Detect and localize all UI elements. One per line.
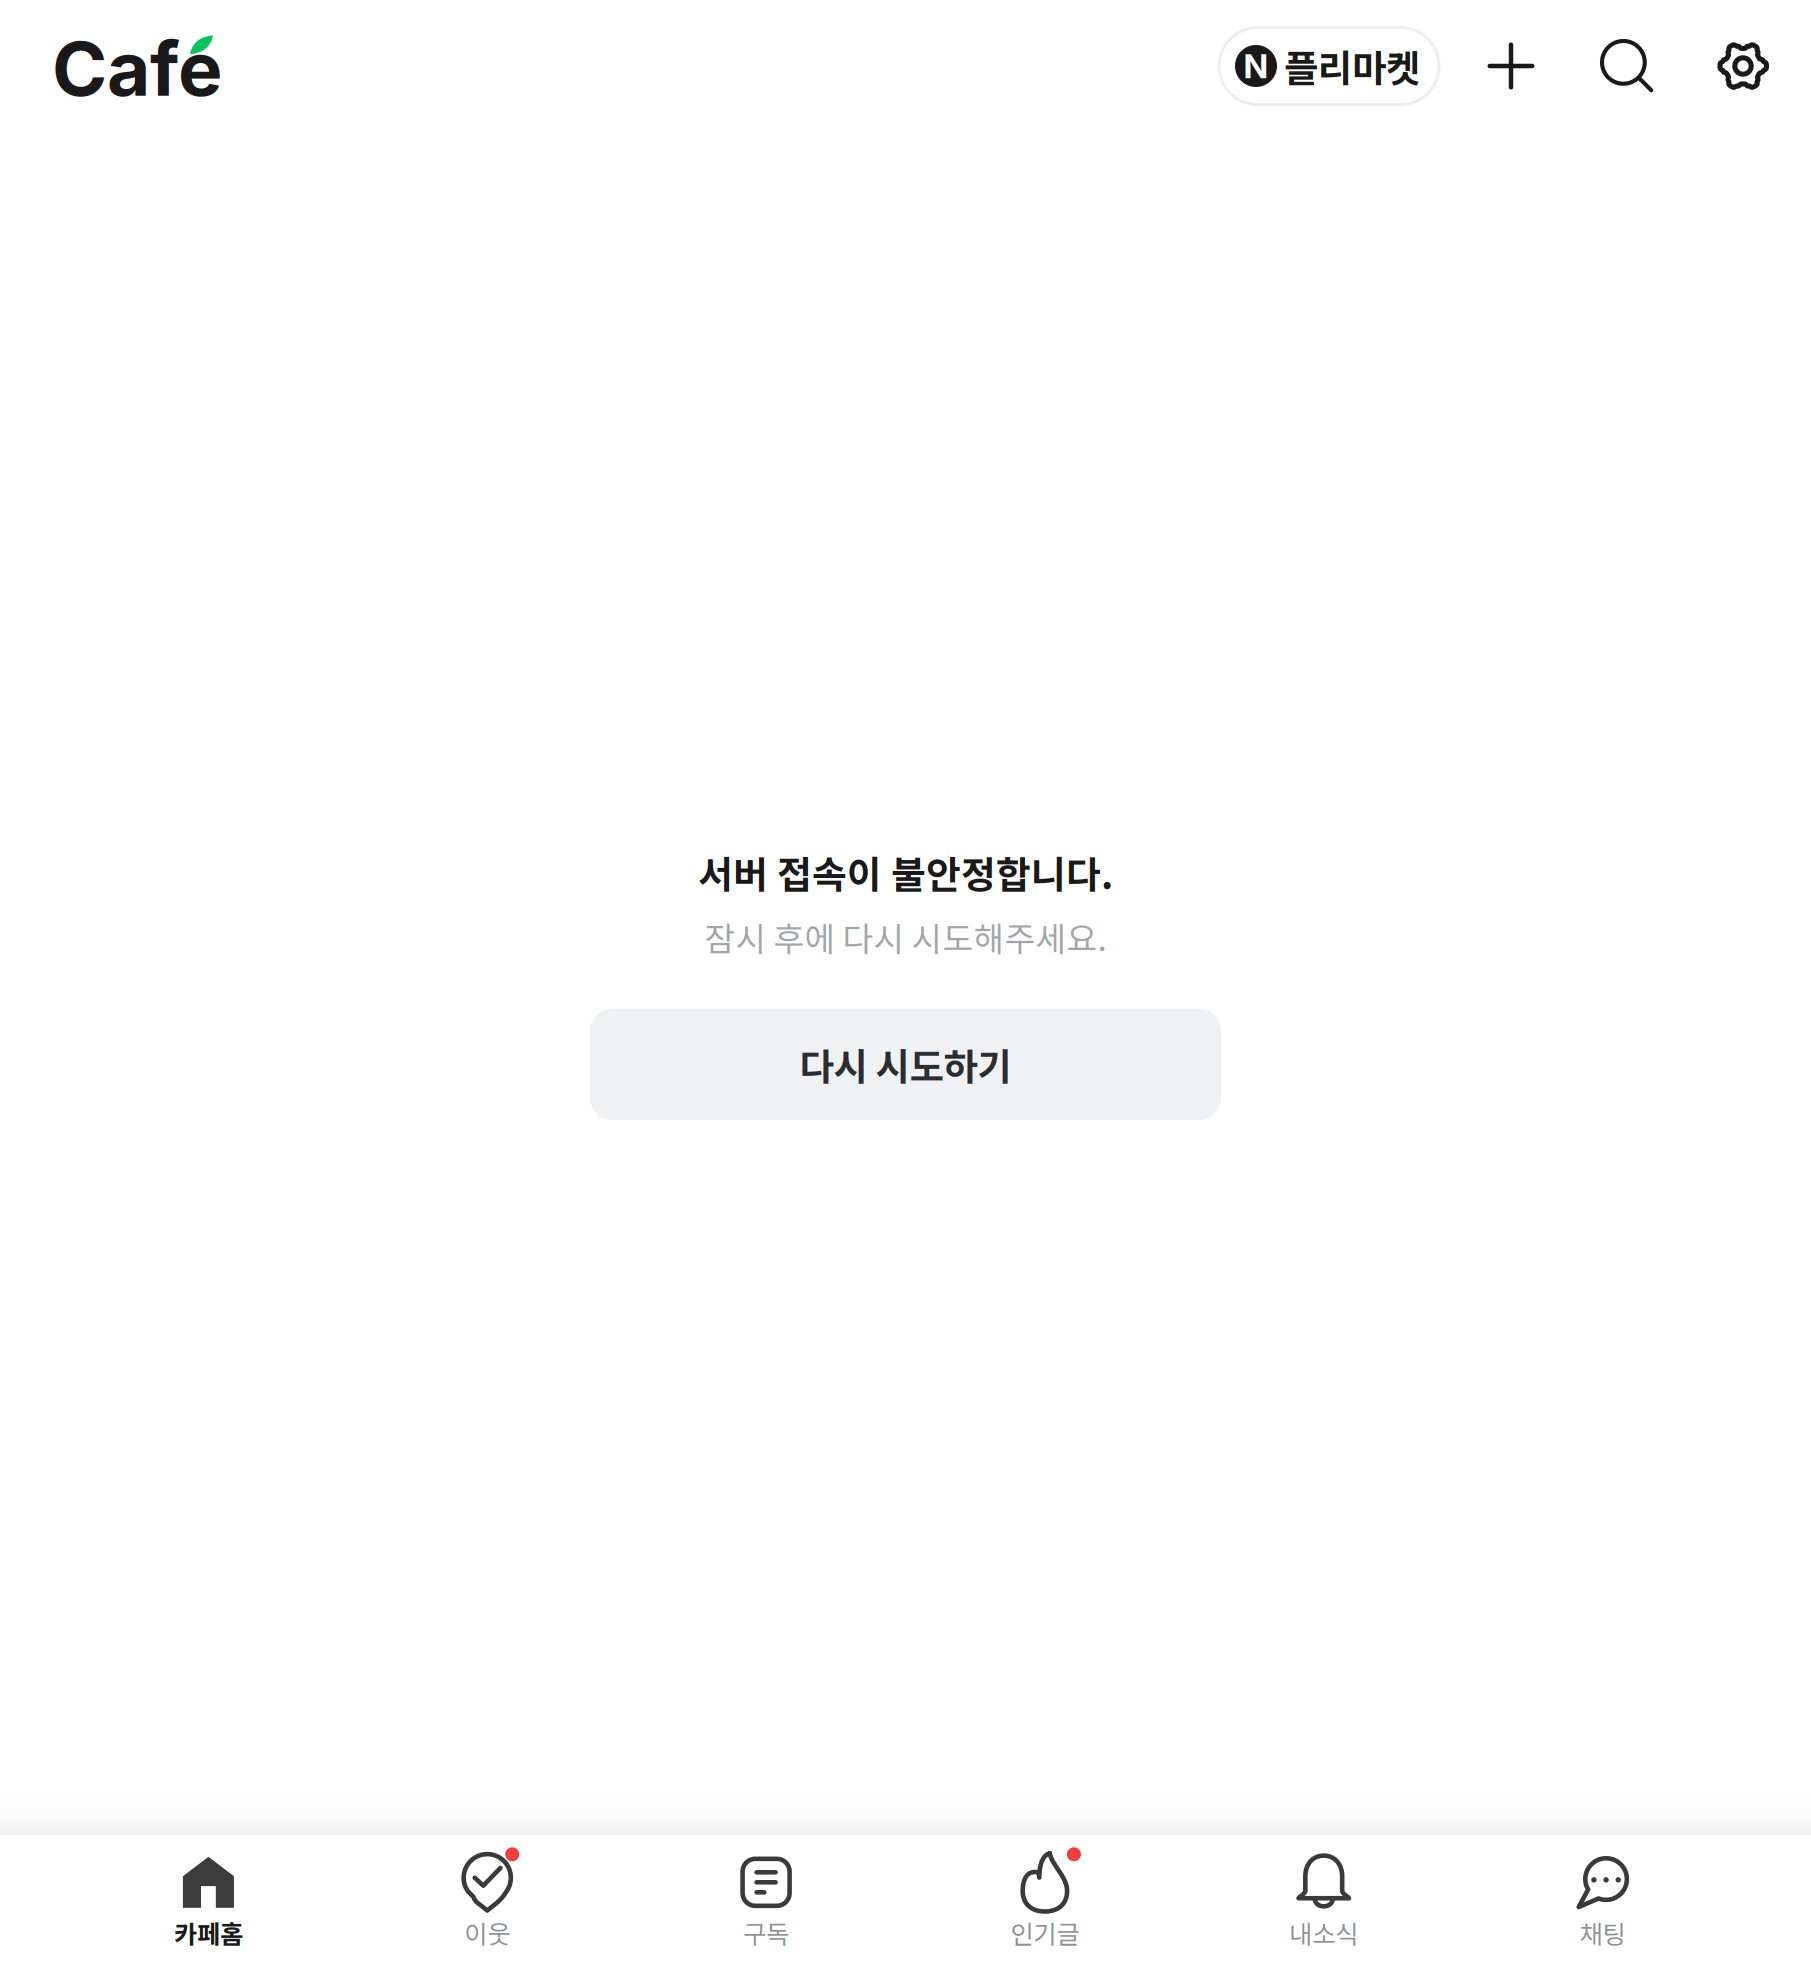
staticText: 채팅 <box>1580 1914 1626 1951</box>
button[interactable]: 내소식 <box>1184 1835 1463 1979</box>
button[interactable]: 구독 <box>627 1835 905 1979</box>
staticText: 이웃 <box>464 1914 510 1951</box>
staticText: 카페홈 <box>174 1914 243 1951</box>
button[interactable]: 이웃 <box>348 1835 627 1979</box>
staticText: 인기글 <box>1010 1914 1079 1951</box>
button[interactable]: Cafe <box>0 18 234 114</box>
button[interactable]: 다시 시도하기 <box>590 1009 1221 1120</box>
button[interactable]: 채팅 <box>1463 1835 1742 1979</box>
staticText: 서버 접속이 불안정합니다. <box>698 845 1113 900</box>
button[interactable]: Settings <box>1708 22 1778 110</box>
button[interactable]: Search <box>1592 22 1662 110</box>
staticText: 다시 시도하기 <box>799 1037 1011 1091</box>
button[interactable]: N <box>1219 27 1439 104</box>
staticText: 플리마켓 <box>1284 39 1420 93</box>
staticText: N <box>1243 46 1268 86</box>
button[interactable]: 인기글 <box>905 1835 1184 1979</box>
staticText: 구독 <box>743 1914 789 1951</box>
button[interactable]: Write <box>1476 22 1546 110</box>
staticText: 내소식 <box>1289 1914 1358 1951</box>
button[interactable]: 카페홈 <box>69 1835 348 1979</box>
staticText: Cafe <box>52 23 222 114</box>
staticText: 잠시 후에 다시 시도해주세요. <box>704 913 1106 961</box>
